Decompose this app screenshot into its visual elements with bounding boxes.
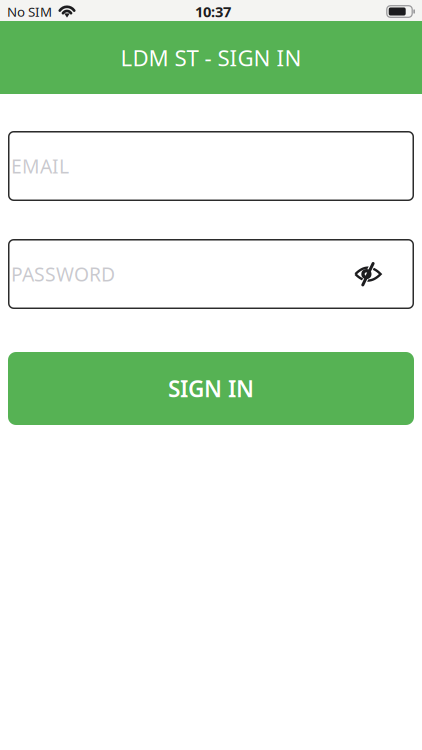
staticText: LDM ST - SIGN IN — [120, 42, 301, 73]
staticText: PASSWORD — [11, 261, 115, 287]
staticText: 10:37 — [195, 1, 231, 21]
staticText: No SIM — [7, 2, 52, 21]
button[interactable]: SIGN IN — [8, 352, 414, 425]
staticText: SIGN IN — [168, 373, 254, 404]
staticText: EMAIL — [11, 153, 69, 179]
button[interactable]: Show password — [342, 250, 382, 297]
